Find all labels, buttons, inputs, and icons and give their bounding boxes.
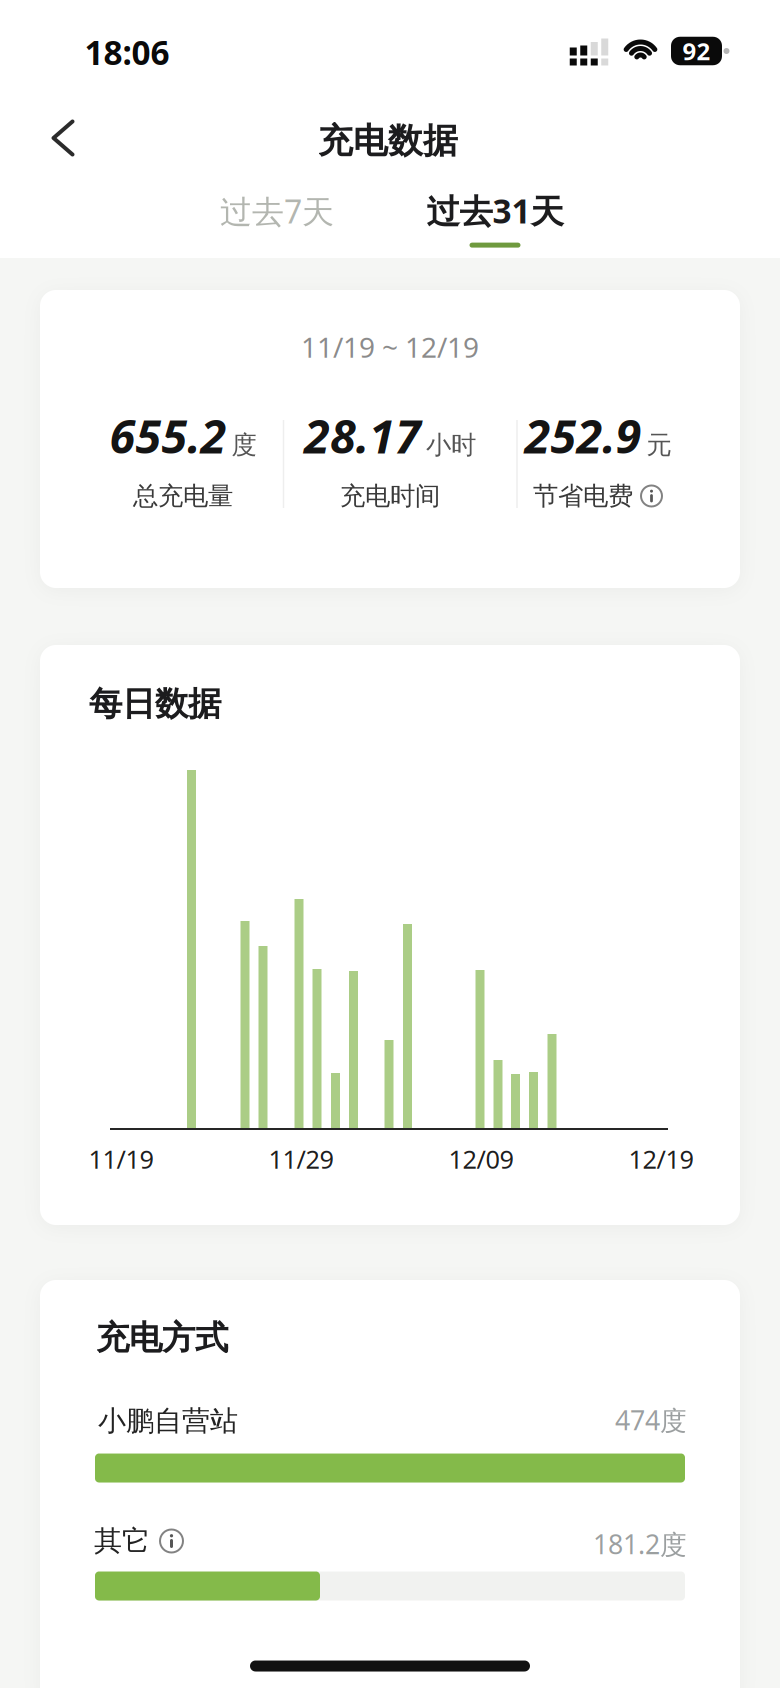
- button[interactable]: 其它说明: [159, 1528, 184, 1553]
- staticText: 655.2: [109, 404, 226, 466]
- staticText: 11/19: [88, 1142, 153, 1176]
- staticText: 节省电费: [533, 480, 633, 511]
- staticText: 度: [231, 430, 256, 461]
- staticText: 474度: [615, 1402, 687, 1438]
- staticText: 92: [682, 35, 710, 67]
- staticText: 28.17: [304, 404, 421, 466]
- button[interactable]: 过去7天: [212, 182, 342, 240]
- staticText: 充电数据: [318, 120, 458, 162]
- staticText: 12/09: [448, 1142, 513, 1176]
- button[interactable]: Back: [39, 107, 86, 168]
- staticText: 充电时间: [340, 480, 440, 511]
- staticText: 11/29: [268, 1142, 333, 1176]
- staticText: 其它: [94, 1524, 150, 1558]
- staticText: 总充电量: [133, 480, 233, 511]
- staticText: 181.2度: [593, 1526, 687, 1562]
- staticText: 过去7天: [220, 190, 334, 232]
- staticText: 18:06: [84, 30, 169, 74]
- staticText: 252.9: [524, 404, 641, 466]
- staticText: 每日数据: [89, 683, 221, 724]
- button[interactable]: 过去31天: [426, 188, 563, 248]
- staticText: 11/19 ~ 12/19: [301, 328, 479, 366]
- staticText: 充电方式: [96, 1317, 228, 1358]
- staticText: 小时: [426, 430, 476, 461]
- staticText: 过去31天: [426, 188, 563, 233]
- button[interactable]: 节省电费说明: [640, 484, 663, 507]
- staticText: 12/19: [628, 1142, 693, 1176]
- staticText: 小鹏自营站: [98, 1404, 238, 1438]
- staticText: 元: [646, 430, 671, 461]
